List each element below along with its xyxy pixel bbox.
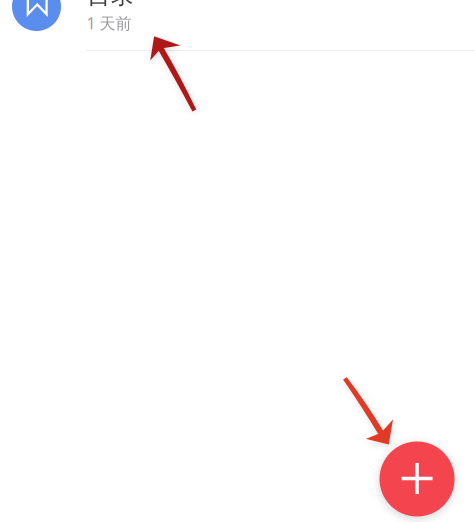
button[interactable]: New document: [379, 441, 454, 516]
staticText: 1 天前: [86, 12, 131, 34]
staticText: 目录: [87, 0, 135, 10]
button[interactable]: 目录: [0, 0, 475, 51]
